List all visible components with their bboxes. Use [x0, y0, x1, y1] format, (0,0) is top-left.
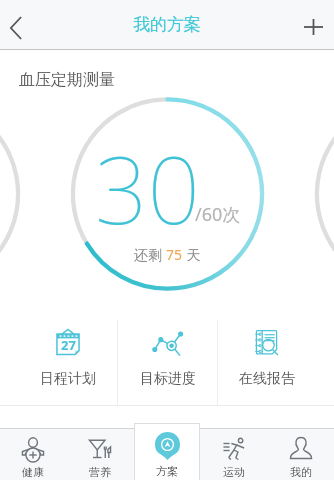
button[interactable]: 27 — [18, 320, 118, 406]
button[interactable]: 目标进度 — [118, 320, 217, 406]
staticText: 在线报告 — [239, 370, 295, 388]
button[interactable]: 营养 — [66, 429, 133, 480]
button[interactable]: 在线报告 — [217, 320, 316, 406]
staticText: 日程计划 — [40, 370, 96, 388]
staticText: 天 — [183, 245, 201, 264]
staticText: 方案 — [156, 464, 178, 478]
staticText: 我的 — [290, 465, 312, 479]
staticText: 75 — [166, 245, 183, 264]
staticText: 营养 — [89, 465, 111, 479]
staticText: 我的方案 — [133, 14, 201, 35]
button[interactable]: Add — [296, 0, 334, 50]
button[interactable]: 我的 — [267, 429, 334, 480]
staticText: 27 — [61, 336, 76, 354]
staticText: 目标进度 — [140, 370, 196, 388]
button[interactable]: 方案 — [135, 424, 199, 480]
staticText: 30 — [95, 126, 200, 251]
staticText: /60次 — [195, 202, 241, 227]
button[interactable]: 运动 — [200, 429, 267, 480]
button[interactable]: Back — [0, 0, 35, 50]
staticText: 血压定期测量 — [19, 70, 115, 90]
staticText: 健康 — [22, 465, 44, 479]
button[interactable]: 健康 — [0, 429, 66, 480]
staticText: 还剩 — [134, 245, 166, 264]
staticText: 运动 — [223, 465, 245, 479]
